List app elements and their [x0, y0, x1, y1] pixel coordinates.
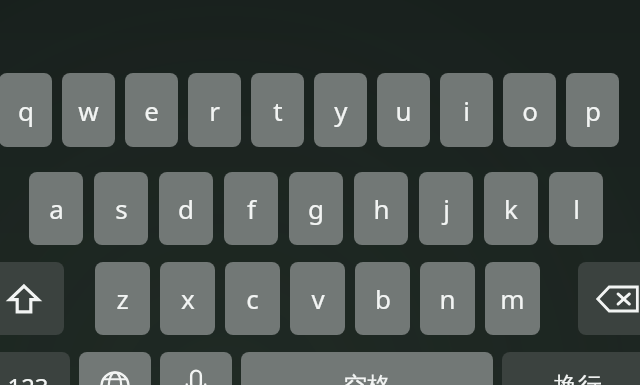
button[interactable]: z [95, 262, 150, 335]
staticText: n [439, 281, 456, 316]
staticText: c [246, 281, 259, 316]
staticText: h [373, 191, 390, 226]
button[interactable]: w [62, 73, 115, 147]
button[interactable]: m [485, 262, 540, 335]
staticText: e [144, 93, 159, 128]
button[interactable]: a [29, 172, 83, 245]
staticText: w [78, 93, 99, 128]
button[interactable]: b [355, 262, 410, 335]
staticText: l [573, 191, 580, 226]
staticText: 空格 [343, 371, 391, 385]
button[interactable]: q [0, 73, 52, 147]
button[interactable]: d [159, 172, 213, 245]
button[interactable]: Shift [0, 262, 64, 335]
staticText: i [463, 93, 470, 128]
staticText: r [209, 93, 220, 128]
button[interactable]: c [225, 262, 280, 335]
staticText: 123 [7, 370, 49, 385]
button[interactable]: Voice input [160, 352, 232, 385]
button[interactable]: j [419, 172, 473, 245]
button[interactable]: t [251, 73, 304, 147]
staticText: d [178, 191, 194, 226]
button[interactable]: x [160, 262, 215, 335]
staticText: z [116, 281, 129, 316]
button[interactable]: g [289, 172, 343, 245]
staticText: v [311, 281, 325, 316]
button[interactable]: n [420, 262, 475, 335]
staticText: j [443, 191, 450, 226]
button[interactable]: e [125, 73, 178, 147]
button[interactable]: u [377, 73, 430, 147]
staticText: a [49, 191, 64, 226]
staticText: u [395, 93, 412, 128]
staticText: k [504, 191, 518, 226]
staticText: x [181, 281, 195, 316]
button[interactable]: Change keyboard [79, 352, 151, 385]
button[interactable]: f [224, 172, 278, 245]
button[interactable]: p [566, 73, 619, 147]
staticText: g [308, 191, 324, 226]
button[interactable]: i [440, 73, 493, 147]
button[interactable]: v [290, 262, 345, 335]
staticText: o [522, 93, 538, 128]
button[interactable]: h [354, 172, 408, 245]
button[interactable]: r [188, 73, 241, 147]
staticText: t [273, 93, 283, 128]
staticText: b [375, 281, 391, 316]
staticText: p [585, 93, 601, 128]
button[interactable]: 123 [0, 352, 70, 385]
staticText: y [334, 93, 348, 128]
button[interactable]: s [94, 172, 148, 245]
button[interactable]: l [549, 172, 603, 245]
button[interactable]: 空格 [241, 352, 493, 385]
button[interactable]: o [503, 73, 556, 147]
staticText: m [500, 281, 525, 316]
button[interactable]: 换行 [502, 352, 640, 385]
button[interactable]: k [484, 172, 538, 245]
button[interactable]: Backspace [578, 262, 640, 335]
staticText: 换行 [554, 371, 602, 385]
button[interactable]: y [314, 73, 367, 147]
staticText: q [18, 93, 34, 128]
staticText: f [247, 191, 256, 226]
staticText: s [115, 191, 128, 226]
